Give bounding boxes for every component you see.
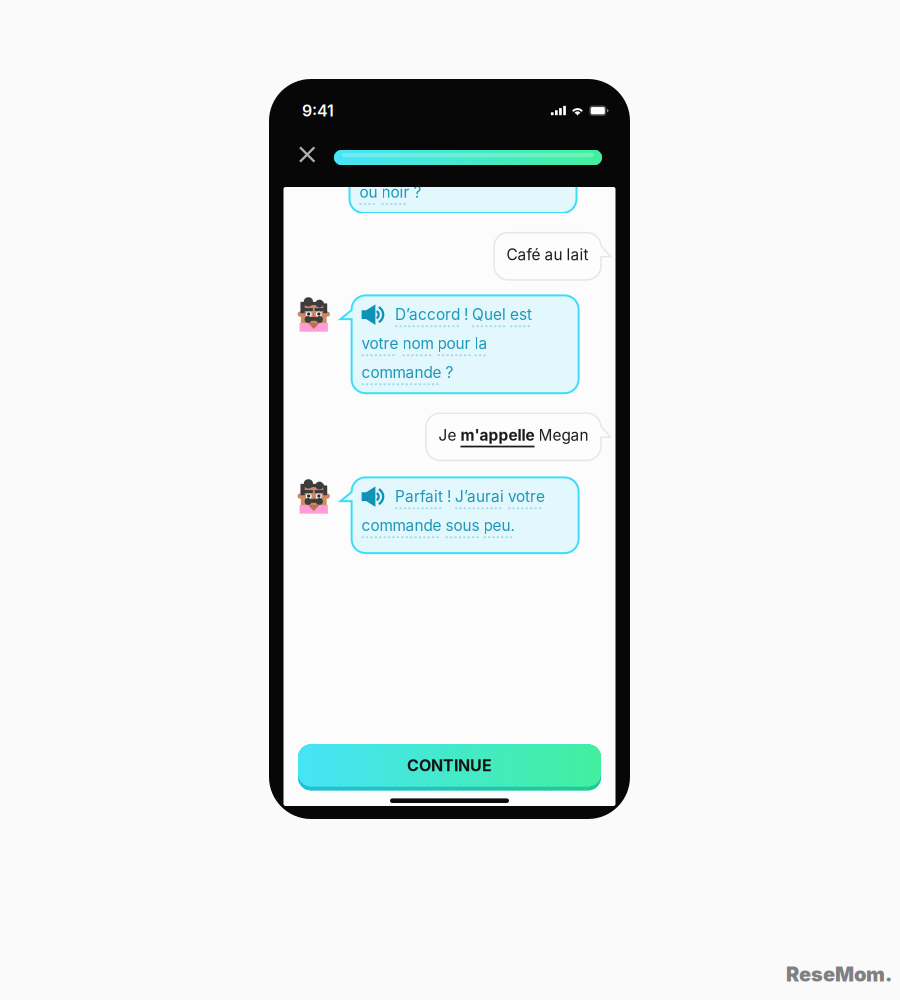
staticText: votre [362,334,399,353]
staticText: ou [359,183,377,201]
staticText: ? [413,183,421,201]
staticText: m'appelle [460,426,534,444]
staticText: Je [438,426,456,444]
staticText: Parfait [395,487,443,506]
staticText: est [510,305,532,324]
staticText: D’accord [395,305,460,324]
staticText: ReseMom. [786,962,892,986]
staticText: peu. [484,516,515,535]
staticText: commande [362,516,442,535]
staticText: 9:41 [302,101,334,120]
button[interactable]: Café au lait [494,233,610,280]
staticText: ! [464,305,468,324]
staticText: ? [446,363,454,382]
staticText: noir [381,183,409,201]
staticText: J’aurai [455,487,504,506]
staticText: nom [403,334,434,353]
staticText: pour [438,334,471,353]
button[interactable]: Play: Parfait ! J’aurai votre commande s… [283,477,615,553]
staticText: votre [508,487,545,506]
staticText: CONTINUE [407,756,492,775]
staticText: Quel [472,305,506,324]
button[interactable]: Close lesson [293,141,326,174]
staticText: Café au lait [506,245,588,264]
button[interactable]: CONTINUE [298,744,601,790]
button[interactable]: Play: D’accord ! Quel est votre nom pour… [283,295,615,393]
staticText: commande [362,363,442,382]
staticText: la [475,334,488,353]
staticText: ! [447,487,451,506]
button[interactable]: Je [426,413,610,460]
staticText: Megan [538,426,588,444]
staticText: sous [446,516,480,535]
